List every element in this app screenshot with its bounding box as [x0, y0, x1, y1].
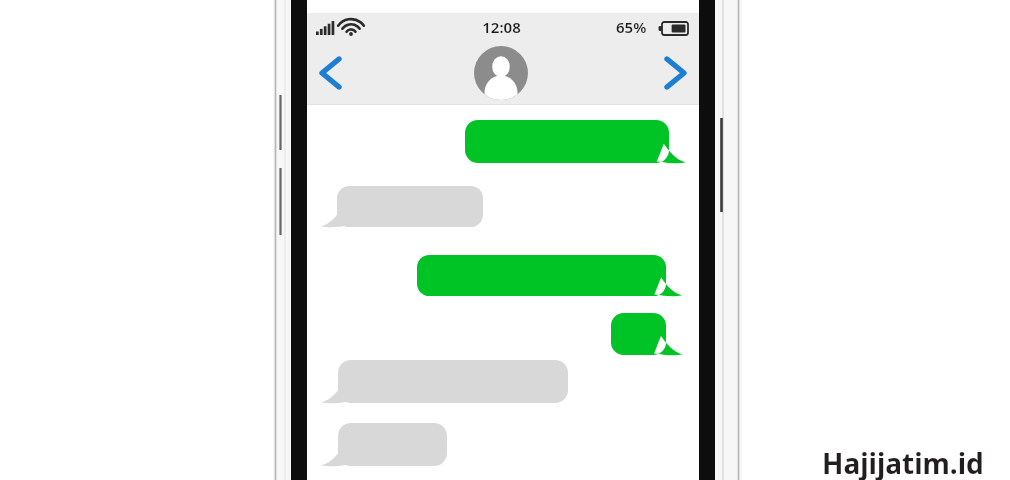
staticText: 12:08	[482, 17, 521, 37]
staticText: 65%	[616, 17, 647, 37]
button[interactable]: Forward	[652, 50, 698, 96]
button[interactable]: Contact profile photo	[474, 46, 528, 100]
button[interactable]: Back	[312, 50, 358, 96]
staticText: Hajijatim.id	[822, 444, 984, 480]
